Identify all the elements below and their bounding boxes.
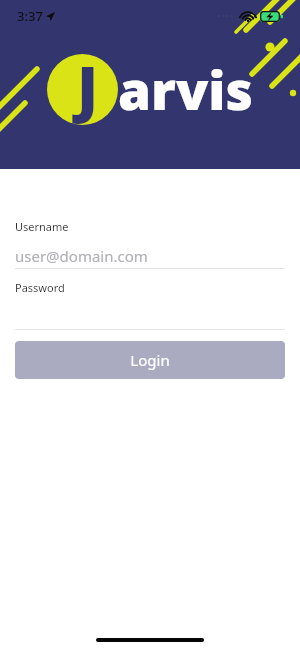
staticText: user@domain.com (15, 246, 148, 266)
staticText: J (77, 46, 99, 128)
staticText: arvis (118, 53, 253, 125)
button[interactable]: Login (15, 341, 285, 379)
staticText: Login (130, 350, 170, 370)
staticText: 3:37 (17, 7, 43, 25)
staticText: Username (15, 219, 69, 234)
button[interactable]: user@domain.com (15, 243, 285, 268)
staticText: Password (15, 280, 65, 295)
